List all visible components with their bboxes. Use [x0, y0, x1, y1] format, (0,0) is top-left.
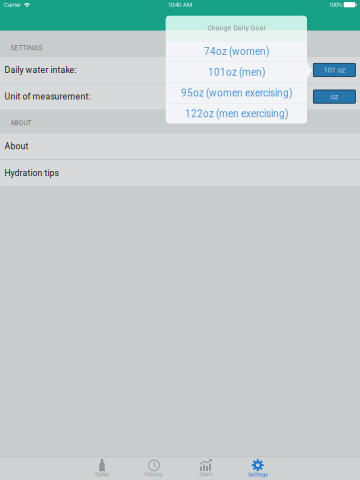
staticText: ABOUT [10, 119, 31, 127]
staticText: Change Daily Goal [207, 24, 265, 32]
button[interactable]: About [0, 133, 360, 159]
staticText: SETTINGS [10, 44, 42, 52]
staticText: 100% [329, 1, 342, 8]
staticText: 74oz (women) [204, 46, 269, 57]
button[interactable]: History [128, 457, 180, 480]
staticText: 122oz (men exercising) [185, 108, 288, 120]
button[interactable]: 95oz (women exercising) [166, 83, 307, 103]
button[interactable]: 74oz (women) [166, 41, 307, 62]
staticText: Settings [248, 471, 268, 478]
staticText: 95oz (women exercising) [181, 87, 292, 99]
button[interactable]: Hydration tips [0, 160, 360, 186]
staticText: 101oz (men) [208, 66, 265, 78]
staticText: Chart [199, 471, 212, 478]
button[interactable]: 122oz (men exercising) [166, 104, 307, 124]
staticText: Carrier [4, 1, 21, 8]
staticText: 10:40 AM [168, 1, 192, 8]
button[interactable]: Daily water intake: [0, 57, 360, 83]
button[interactable]: Today [76, 457, 128, 480]
staticText: About [4, 141, 28, 151]
staticText: oz [330, 92, 338, 101]
staticText: Daily water intake: [4, 65, 76, 75]
button[interactable]: 101oz (men) [166, 62, 307, 82]
staticText: 101 oz [323, 66, 345, 74]
staticText: Today [94, 471, 109, 478]
staticText: History [145, 471, 163, 478]
staticText: Unit of measurement: [4, 91, 90, 102]
button[interactable]: Chart [180, 457, 232, 480]
button[interactable]: Unit of measurement: [0, 84, 360, 110]
button[interactable]: Settings [232, 457, 284, 480]
staticText: Hydration tips [4, 168, 58, 178]
